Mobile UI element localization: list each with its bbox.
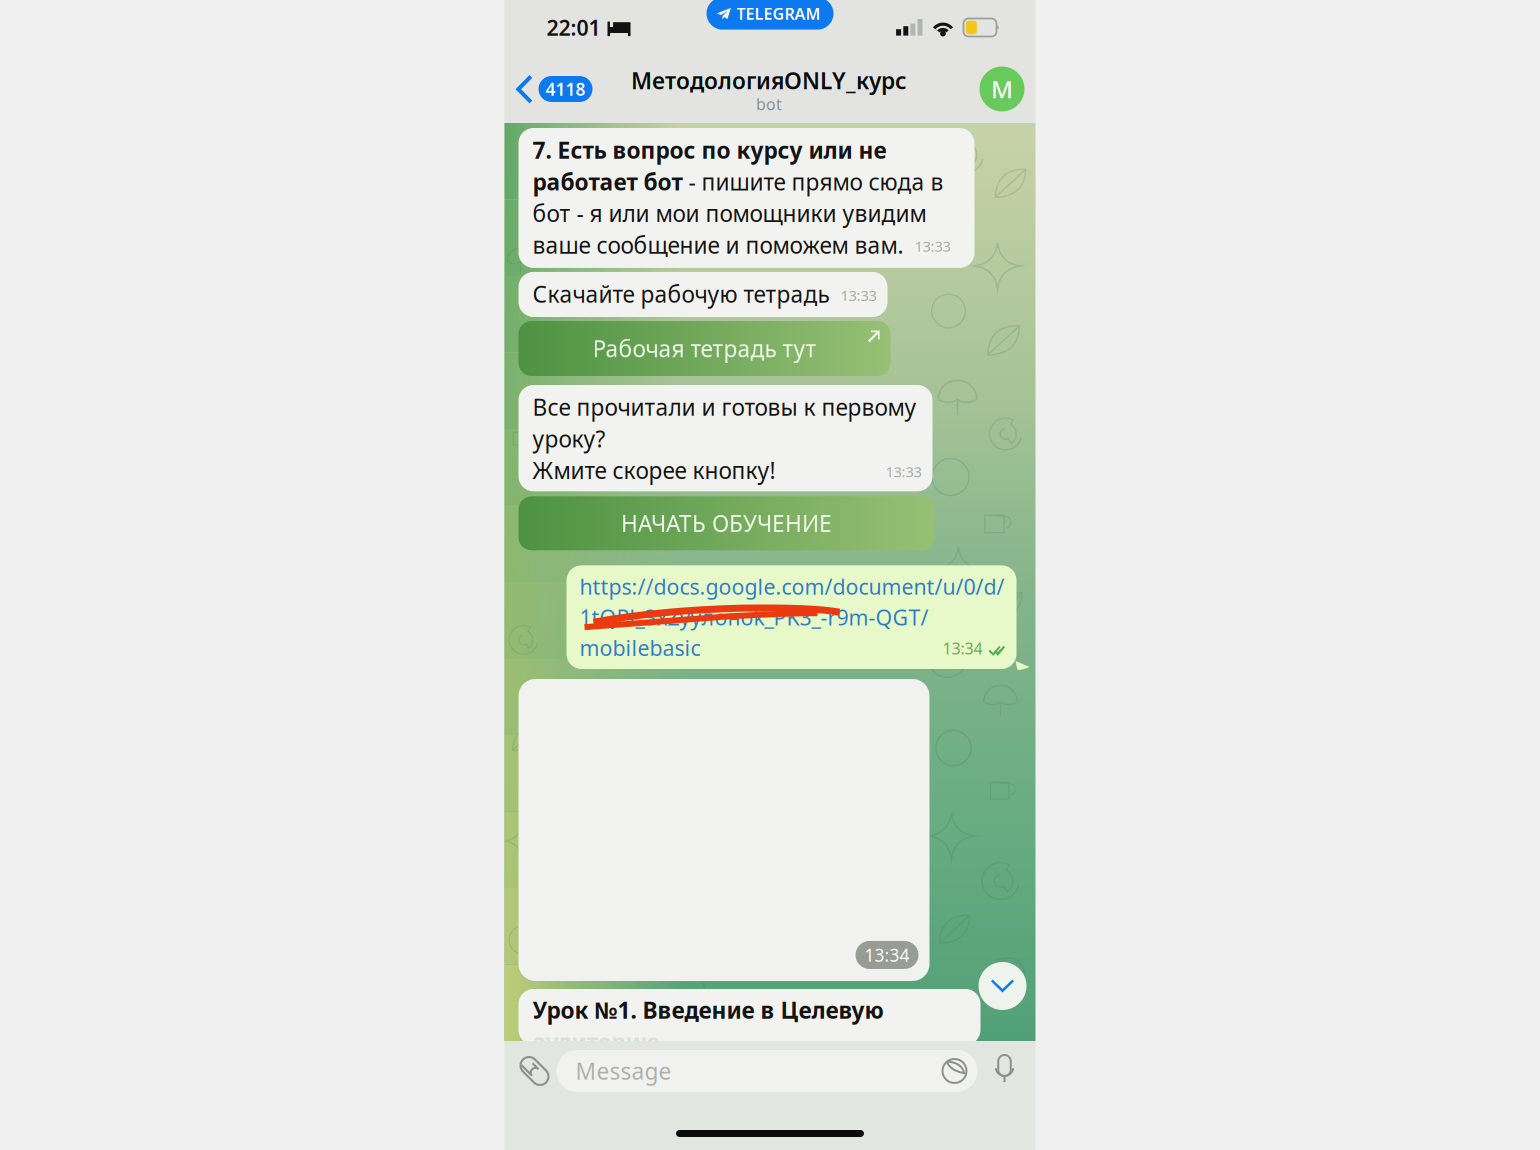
staticText: 13:34 <box>864 943 909 966</box>
staticText: Все прочитали и готовы к первому <box>532 392 916 422</box>
staticText: Жмите скорее кнопку! <box>532 455 775 485</box>
staticText: mobilebasic <box>579 634 700 662</box>
button[interactable]: Stickers <box>941 1058 977 1084</box>
staticText: - пишите прямо сюда в <box>682 167 943 197</box>
staticText: 13:33 <box>840 285 876 305</box>
staticText: https://docs.google.com/document/u/0/d/ <box>579 572 1004 601</box>
staticText: Message <box>575 1056 671 1086</box>
staticText: Рабочая тетрадь тут <box>592 333 816 364</box>
button[interactable]: Рабочая тетрадь тут <box>518 321 890 376</box>
staticText: работает бот <box>532 167 682 197</box>
staticText: 13:34 <box>942 638 982 659</box>
button[interactable]: 4118 <box>504 65 592 113</box>
staticText: Скачайте рабочую тетрадь <box>532 279 829 309</box>
staticText: 4118 <box>545 77 585 100</box>
staticText: МетодологияONLY_курс <box>631 65 907 95</box>
staticText: 13:33 <box>885 462 921 481</box>
staticText: ваше сообщение и поможем вам. <box>532 230 903 260</box>
staticText: bot <box>756 93 782 115</box>
button[interactable]: Chat profile <box>977 64 1035 113</box>
staticText: Урок №1. Введение в Целевую <box>532 995 883 1025</box>
button[interactable]: Attach file <box>517 1054 551 1088</box>
staticText: НАЧАТЬ ОБУЧЕНИЕ <box>621 508 832 538</box>
button[interactable]: Record voice message <box>977 1053 1017 1089</box>
staticText: M <box>991 73 1013 105</box>
staticText: уроку? <box>532 424 605 454</box>
staticText: TELEGRAM <box>736 3 820 24</box>
button[interactable]: НАЧАТЬ ОБУЧЕНИЕ <box>518 496 934 550</box>
staticText: 13:33 <box>914 236 950 256</box>
staticText: бот - я или мои помощники увидим <box>532 198 926 228</box>
button[interactable]: Scroll to bottom <box>977 961 1035 1011</box>
staticText: 7. Есть вопрос по курсу или не <box>532 135 886 165</box>
staticText: 1tQPl_3xZyyлoнok_PK3_-r9m-QGT/ <box>579 603 928 631</box>
staticText: 22:01 <box>546 13 600 42</box>
staticText: аудиторию <box>532 1027 659 1057</box>
